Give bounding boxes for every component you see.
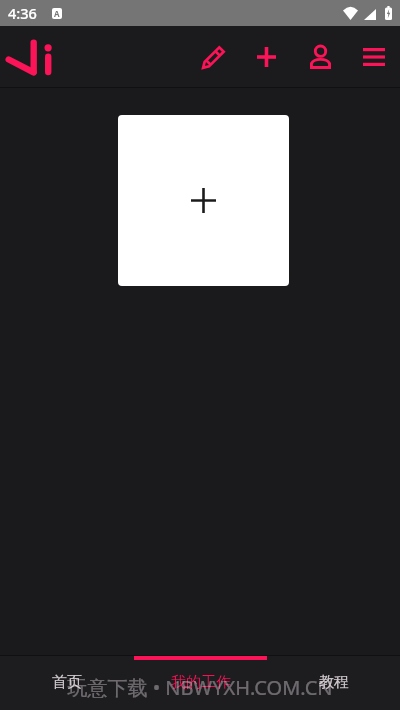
button[interactable]: Create new project — [118, 115, 289, 286]
button[interactable]: 首页 — [0, 656, 134, 710]
button[interactable]: Add — [243, 26, 290, 88]
staticText: 4:36 — [8, 3, 37, 23]
staticText: 我的工作 — [171, 673, 231, 692]
button[interactable]: Account — [297, 26, 344, 88]
button[interactable]: 我的工作 — [134, 656, 267, 710]
staticText: 玩意下载 • NBWYXH.COM.CN — [67, 674, 333, 701]
button[interactable]: Vi logo — [0, 26, 60, 88]
button[interactable]: 教程 — [267, 656, 400, 710]
button[interactable]: Edit — [190, 26, 237, 88]
staticText: 首页 — [52, 673, 82, 692]
staticText: A — [54, 8, 60, 19]
staticText: 教程 — [319, 673, 349, 692]
button[interactable]: Menu — [350, 26, 397, 88]
